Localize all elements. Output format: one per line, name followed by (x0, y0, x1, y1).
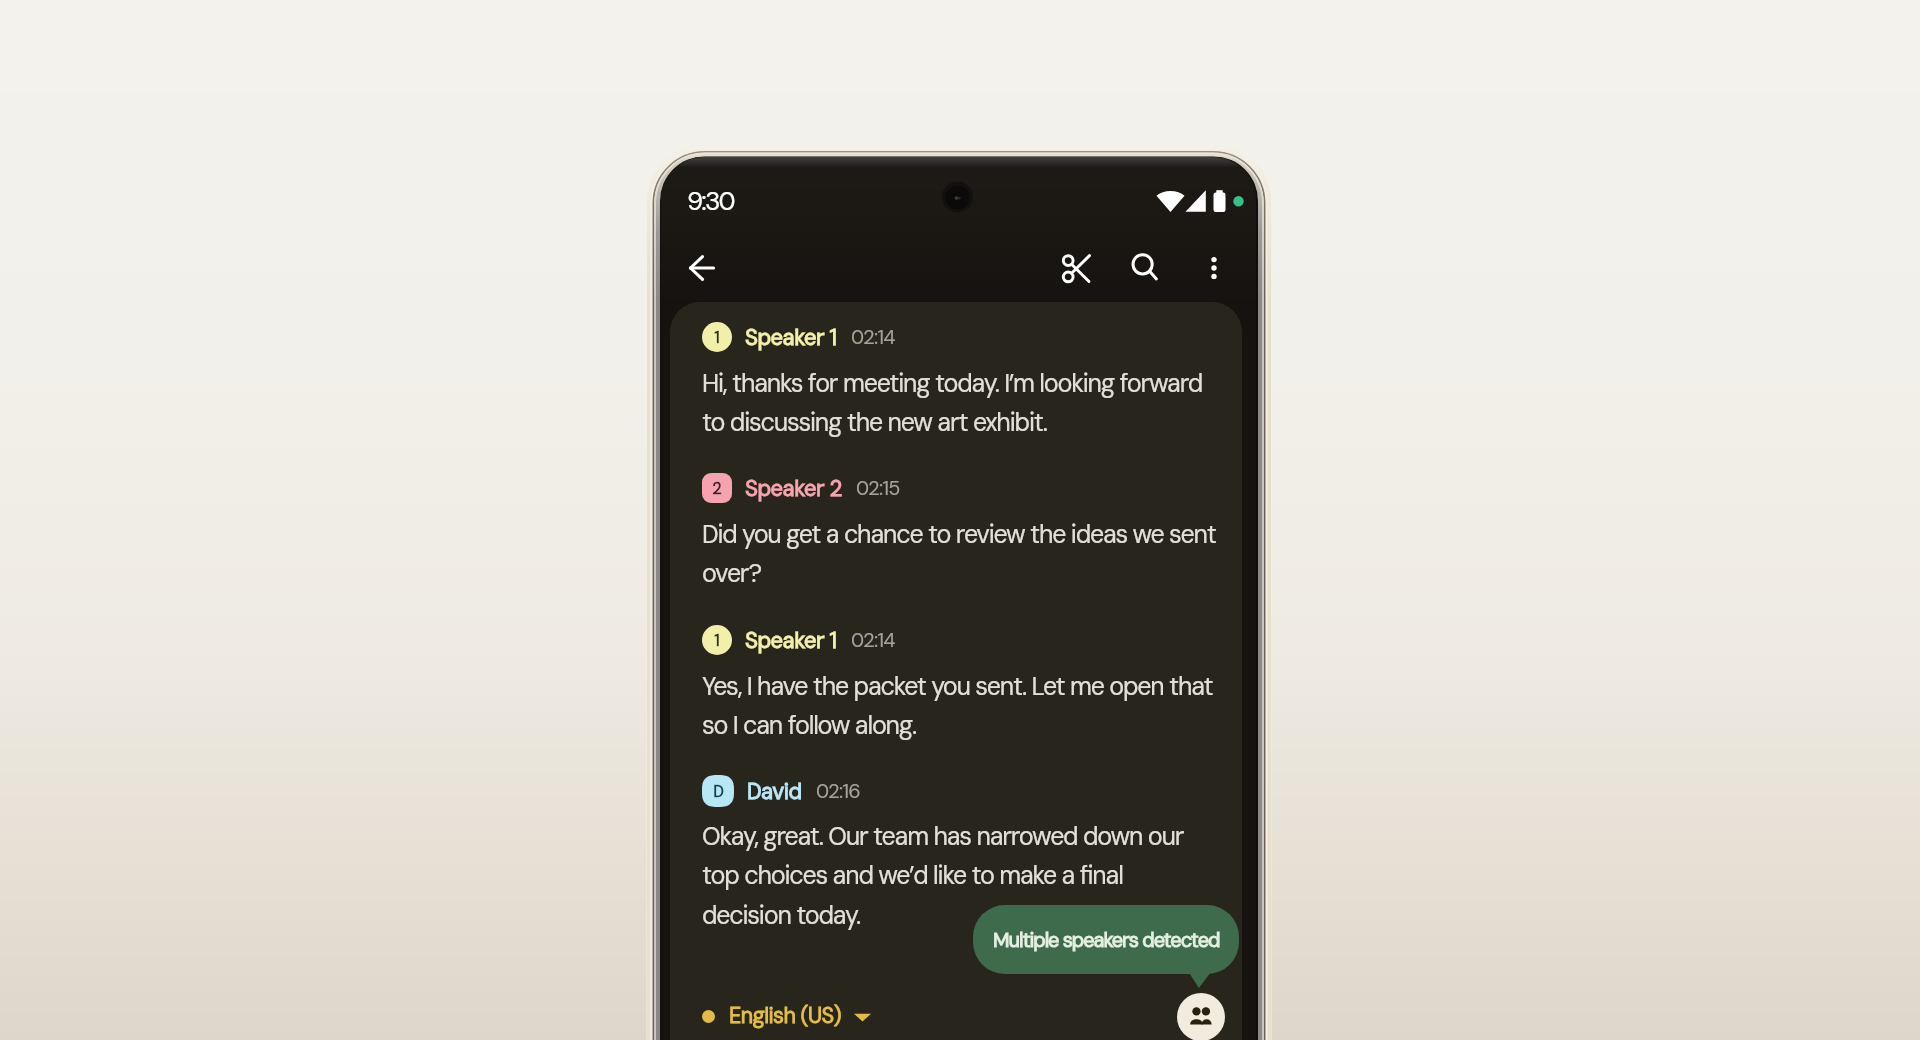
staticText: 2 (712, 478, 722, 499)
staticText: Did you get a chance to review the ideas… (702, 518, 1216, 590)
staticText: 1 (714, 327, 720, 348)
button[interactable]: Trim (1051, 242, 1103, 294)
staticText: Multiple speakers detected (993, 927, 1220, 953)
button[interactable]: English (US) (702, 1002, 871, 1030)
staticText: 02:16 (816, 778, 860, 804)
staticText: D (713, 781, 724, 802)
staticText: English (US) (729, 1002, 841, 1030)
staticText: Okay, great. Our team has narrowed down … (702, 820, 1184, 932)
staticText: 02:14 (851, 627, 895, 653)
staticText: Speaker 2 (745, 474, 842, 503)
staticText: 1 (714, 630, 720, 651)
staticText: Speaker 1 (745, 626, 837, 655)
staticText: Speaker 1 (745, 323, 837, 352)
button[interactable]: Speakers (1177, 993, 1225, 1040)
staticText: 02:15 (856, 475, 900, 501)
staticText: 02:14 (851, 324, 895, 350)
staticText: 9:30 (687, 184, 734, 218)
staticText: Yes, I have the packet you sent. Let me … (702, 670, 1213, 742)
button[interactable]: More options (1188, 242, 1240, 294)
button[interactable]: Search (1120, 242, 1172, 294)
staticText: Hi, thanks for meeting today. I’m lookin… (702, 367, 1203, 439)
staticText: David (747, 777, 802, 806)
button[interactable]: Back (679, 242, 731, 294)
